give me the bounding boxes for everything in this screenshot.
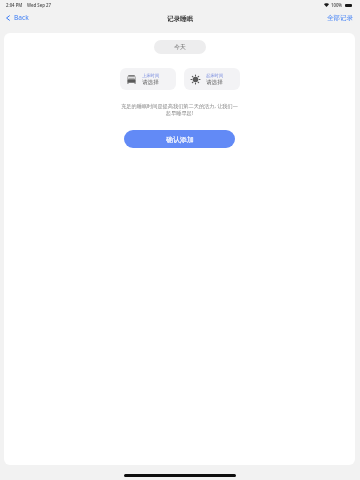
button[interactable]: 今天 [154, 40, 206, 54]
staticText: 请选择 [206, 79, 223, 86]
staticText: 2:04 PM [6, 2, 23, 8]
button[interactable]: 确认添加 [124, 130, 235, 148]
staticText: Wed Sep 27 [27, 2, 51, 8]
staticText: 100% [331, 2, 343, 8]
other: Wake up time [191, 75, 200, 84]
button[interactable]: 全部记录 [319, 11, 360, 25]
button[interactable]: Back [0, 11, 35, 24]
button[interactable]: Wake up time [184, 68, 240, 90]
staticText: 起床时间 [206, 73, 224, 78]
staticText: Back [14, 13, 29, 22]
staticText: 上床时间 [142, 73, 160, 78]
button[interactable]: Bedtime [120, 68, 176, 90]
staticText: 今天 [174, 43, 186, 51]
other: Bedtime [127, 75, 136, 84]
staticText: 请选择 [142, 79, 159, 86]
other: Wi-Fi [324, 3, 329, 7]
other: Battery full [345, 4, 352, 7]
staticText: 充足的睡眠时间是提高我们第二天的活力, 让我们一起早睡早起! [119, 102, 240, 116]
staticText: 全部记录 [327, 14, 353, 22]
staticText: 记录睡眠 [167, 15, 193, 23]
staticText: 确认添加 [166, 135, 194, 144]
